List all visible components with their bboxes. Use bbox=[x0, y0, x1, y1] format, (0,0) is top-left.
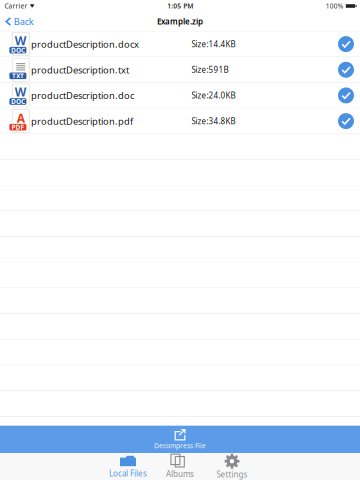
staticText: 100% bbox=[326, 2, 344, 10]
staticText: Example.zip bbox=[157, 16, 203, 27]
button[interactable]: A bbox=[0, 108, 360, 134]
staticText: PDF bbox=[11, 123, 24, 132]
staticText: productDescription.txt bbox=[31, 64, 129, 76]
staticText: Decompress File bbox=[154, 441, 206, 450]
button[interactable]: Decompress File bbox=[0, 426, 360, 453]
staticText: Size:24.0KB bbox=[191, 90, 235, 101]
button[interactable]: Local Files bbox=[102, 452, 154, 480]
button[interactable]: Albums bbox=[154, 452, 206, 480]
staticText: Size:591B bbox=[191, 64, 228, 75]
button[interactable]: W bbox=[0, 83, 360, 108]
staticText: Size:14.4KB bbox=[191, 39, 235, 49]
button[interactable]: W bbox=[0, 31, 360, 57]
button[interactable]: Settings bbox=[206, 451, 258, 480]
staticText: 1:05 PM bbox=[167, 2, 193, 10]
staticText: A bbox=[17, 110, 25, 126]
button[interactable]: TXT bbox=[0, 57, 360, 83]
staticText: DOC bbox=[11, 97, 25, 106]
staticText: W bbox=[15, 33, 27, 48]
button[interactable]: Back bbox=[0, 13, 34, 30]
staticText: Size:34.8KB bbox=[191, 116, 235, 126]
staticText: productDescription.doc bbox=[31, 89, 134, 102]
staticText: DOC bbox=[11, 46, 25, 55]
staticText: Settings bbox=[216, 469, 247, 480]
staticText: W bbox=[15, 84, 27, 100]
staticText: Carrier bbox=[4, 2, 27, 10]
staticText: Local Files bbox=[109, 468, 147, 479]
staticText: productDescription.docx bbox=[31, 38, 139, 50]
staticText: Albums bbox=[166, 469, 194, 479]
staticText: Back bbox=[14, 15, 34, 28]
staticText: TXT bbox=[12, 71, 24, 80]
staticText: productDescription.pdf bbox=[31, 115, 133, 127]
